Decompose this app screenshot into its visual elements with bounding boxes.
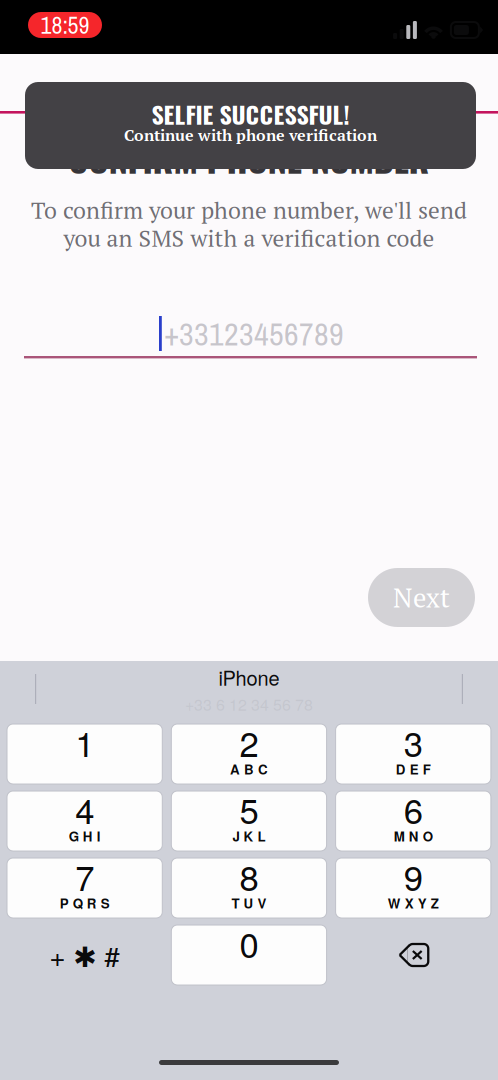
button[interactable]: 8 (171, 858, 327, 918)
staticText: you an SMS with a verification code (63, 222, 434, 253)
button[interactable]: 0 (171, 925, 327, 985)
staticText: 2 (239, 717, 258, 767)
button[interactable]: Symbols and plus (7, 925, 162, 985)
staticText: 6 (404, 784, 423, 834)
button[interactable]: Next (368, 568, 475, 627)
staticText: CONFIRM PHONE NUMBER (68, 132, 429, 184)
staticText: 1 (75, 717, 94, 767)
button[interactable]: 1 (7, 724, 162, 784)
staticText: SELFIE SUCCESSFUL! (151, 96, 349, 132)
staticText: T U V (231, 893, 266, 913)
staticText: G H I (69, 826, 101, 846)
button[interactable]: 3 (336, 724, 491, 784)
button[interactable]: 5 (171, 791, 327, 851)
staticText: 18:59 (40, 9, 89, 41)
staticText: 3 (404, 717, 423, 767)
staticText: D E F (396, 759, 431, 779)
staticText: A B C (230, 759, 268, 779)
button[interactable]: Delete (336, 925, 491, 985)
button[interactable]: 9 (336, 858, 491, 918)
button[interactable]: 6 (336, 791, 491, 851)
staticText: +33123456789 (164, 312, 344, 355)
staticText: P Q R S (60, 893, 110, 913)
staticText: iPhone (218, 663, 279, 691)
staticText: Continue with phone verification (124, 124, 377, 146)
staticText: 5 (239, 784, 258, 834)
staticText: Next (393, 580, 450, 615)
staticText: M N O (394, 826, 433, 846)
button[interactable]: 7 (7, 858, 162, 918)
staticText: 0 (239, 918, 258, 968)
staticText: W X Y Z (388, 893, 439, 913)
staticText: To confirm your phone number, we'll send (31, 194, 467, 225)
staticText: + ✱ # (49, 935, 120, 975)
staticText: +33 6 12 34 56 78 (185, 692, 313, 715)
staticText: 8 (239, 851, 258, 901)
staticText: 9 (404, 851, 423, 901)
staticText: 4 (75, 784, 94, 834)
button[interactable]: 2 (171, 724, 327, 784)
staticText: J K L (232, 826, 265, 846)
button[interactable]: 4 (7, 791, 162, 851)
staticText: 7 (75, 851, 94, 901)
